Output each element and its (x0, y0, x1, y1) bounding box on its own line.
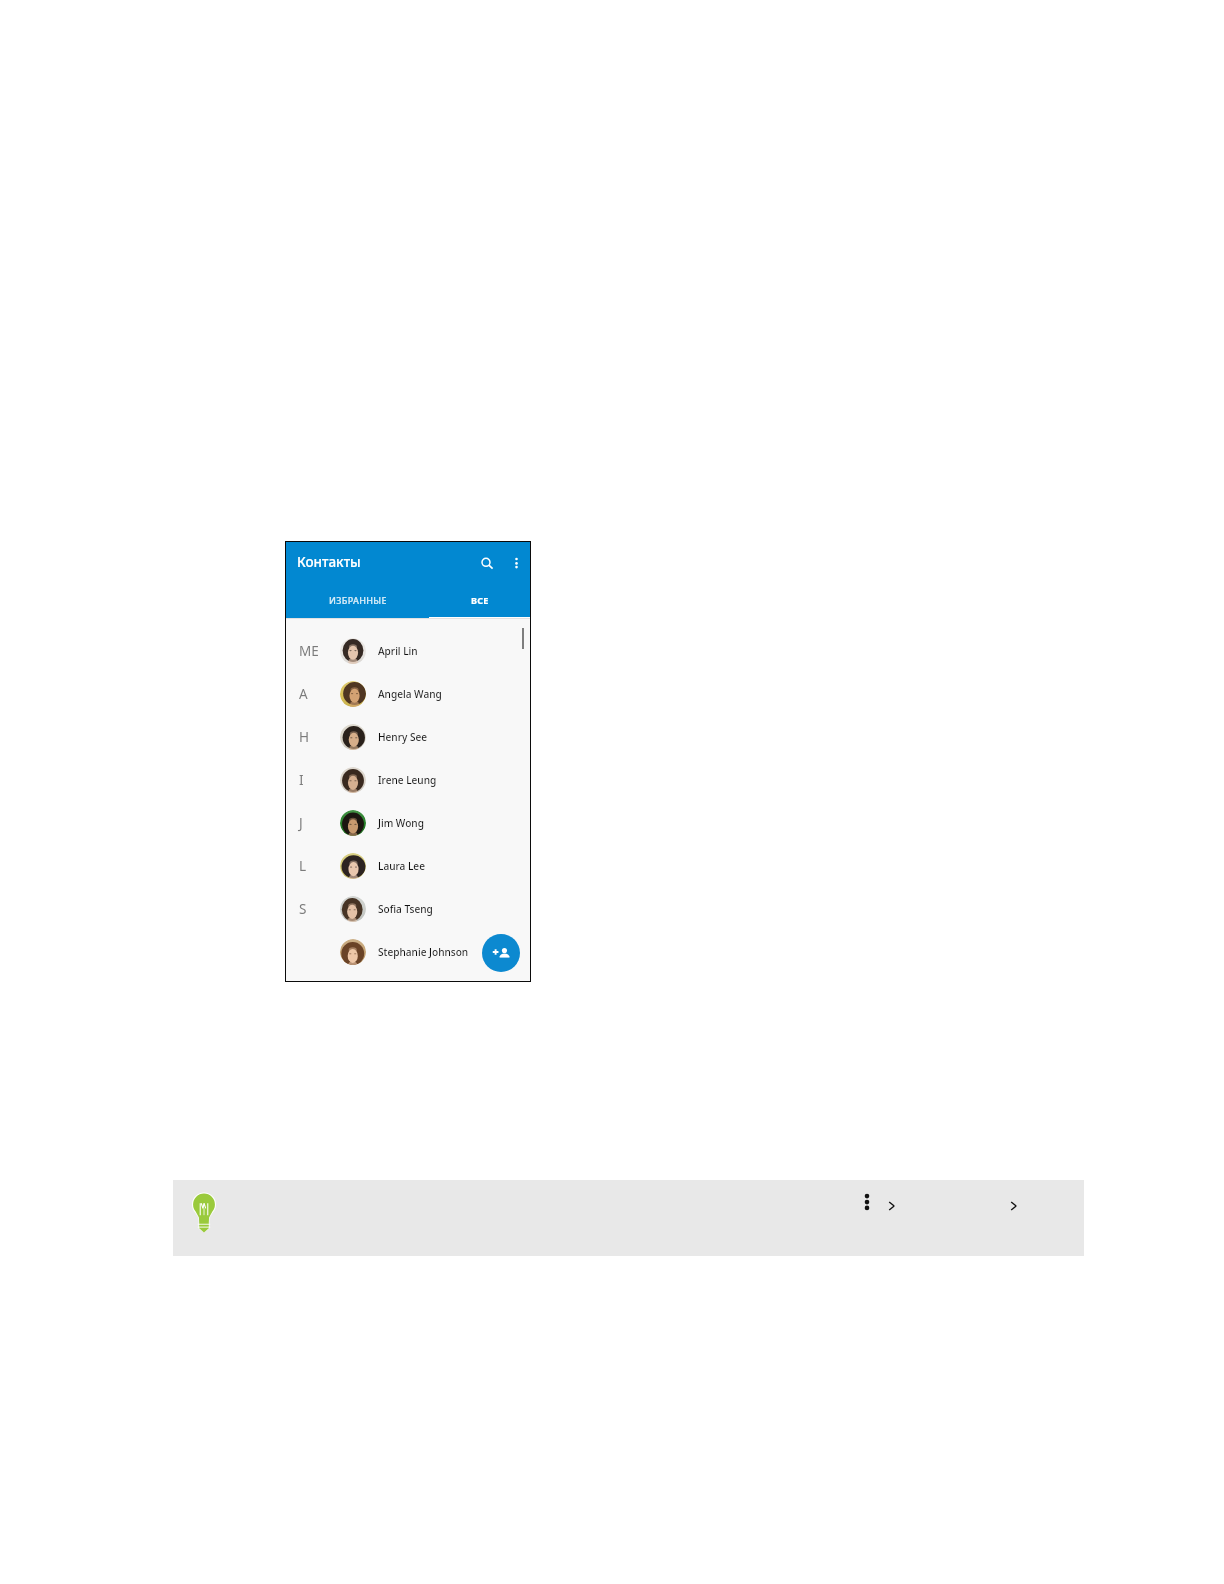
staticText: L (299, 857, 307, 875)
staticText: April Lin (378, 644, 418, 658)
staticText: Irene Leung (378, 773, 437, 787)
button[interactable]: A (286, 672, 530, 715)
button[interactable]: Search (474, 550, 499, 575)
button[interactable]: ВСЕ (429, 586, 530, 613)
staticText: Jim Wong (378, 816, 424, 830)
button[interactable]: H (286, 715, 530, 758)
staticText: Angela Wang (378, 687, 442, 701)
staticText: S (299, 900, 307, 918)
button[interactable]: More options (509, 552, 524, 574)
button[interactable]: I (286, 758, 530, 801)
staticText: A (299, 685, 308, 703)
staticText: Laura Lee (378, 859, 425, 873)
button[interactable]: ME (286, 629, 530, 672)
staticText: Henry See (378, 730, 428, 744)
staticText: I (299, 771, 304, 789)
staticText: H (299, 728, 310, 746)
button[interactable]: Add contact (482, 934, 520, 972)
button[interactable]: J (286, 801, 530, 844)
staticText: ИЗБРАННЫЕ (329, 594, 387, 606)
staticText: ВСЕ (471, 594, 489, 606)
button[interactable]: L (286, 844, 530, 887)
staticText: J (299, 814, 303, 832)
staticText: Sofia Tseng (378, 902, 433, 916)
button[interactable]: ИЗБРАННЫЕ (286, 586, 429, 613)
button[interactable]: Stephanie Johnson (286, 930, 530, 973)
staticText: Контакты (297, 553, 361, 571)
staticText: ME (299, 642, 319, 660)
button[interactable]: Next (1007, 1198, 1021, 1214)
button[interactable]: S (286, 887, 530, 930)
staticText: Stephanie Johnson (378, 945, 469, 959)
button[interactable]: More options (860, 1188, 874, 1216)
button[interactable]: Next (885, 1198, 899, 1214)
